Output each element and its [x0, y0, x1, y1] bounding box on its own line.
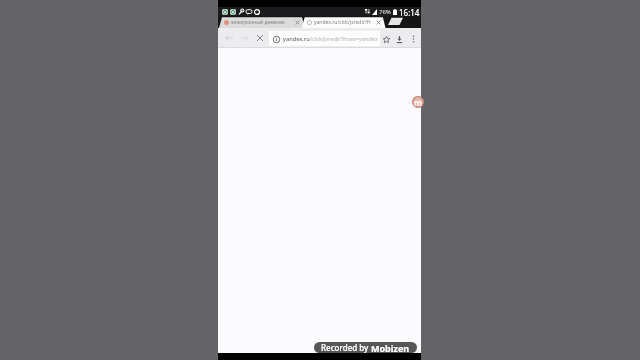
button[interactable]: yandex.ru	[269, 31, 380, 46]
staticText: yandex.ru/clck/jsredir?fr	[314, 19, 375, 26]
button[interactable]: More options	[407, 29, 419, 49]
staticText: m	[414, 97, 422, 108]
button[interactable]: Back	[220, 28, 238, 48]
button[interactable]: Chat head	[412, 96, 424, 108]
staticText: 76%	[379, 8, 391, 16]
staticText: Mobizen	[371, 342, 410, 353]
staticText: yandex.ru	[283, 35, 310, 43]
staticText: 16:14	[399, 7, 420, 16]
staticText: Recorded by	[321, 342, 371, 353]
button[interactable]: Forward	[236, 28, 254, 48]
button[interactable]: электронный дневник	[224, 16, 301, 28]
button[interactable]: New tab	[386, 17, 401, 26]
button[interactable]: Bookmark	[379, 29, 393, 49]
staticText: электронный дневник	[231, 19, 294, 26]
button[interactable]: Download	[392, 29, 406, 49]
button[interactable]: yandex.ru/clck/jsredir?fr	[307, 16, 382, 28]
button[interactable]: Stop loading	[252, 28, 268, 48]
staticText: /clck/jsredir?from=yandex	[310, 35, 378, 43]
